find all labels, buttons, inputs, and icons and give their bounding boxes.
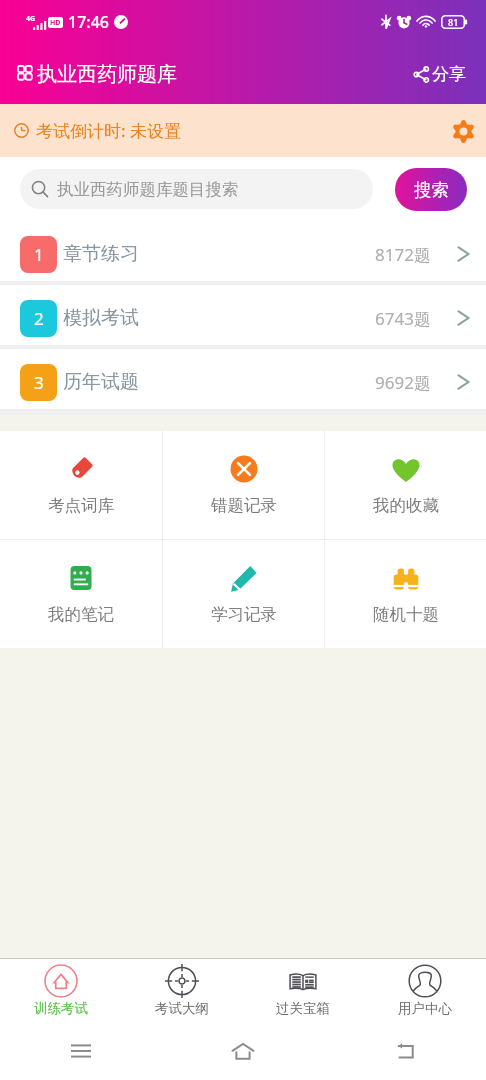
button[interactable]: 2 [0, 285, 486, 345]
button[interactable]: 学习记录 [163, 540, 324, 648]
staticText: 8172题 [375, 243, 431, 266]
button[interactable]: Settings [448, 116, 478, 146]
staticText: 考试大纲 [155, 1000, 209, 1017]
button[interactable]: 考试大纲 [121, 959, 242, 1021]
staticText: 考试倒计时: 未设置 [36, 119, 182, 142]
button[interactable]: 执业西药师题库题目搜索 [20, 169, 373, 209]
staticText: HD [50, 18, 61, 28]
button[interactable]: 分享 [411, 60, 468, 89]
staticText: 过关宝箱 [276, 1000, 330, 1017]
staticText: 执业西药师题库 [37, 62, 177, 87]
staticText: 1 [34, 243, 44, 266]
staticText: 9692题 [375, 371, 431, 394]
staticText: 17:46 [68, 11, 109, 33]
staticText: 训练考试 [34, 1000, 88, 1017]
button[interactable]: 考试倒计时: 未设置 [0, 104, 486, 157]
staticText: 分享 [432, 64, 466, 85]
button[interactable]: 1 [0, 221, 486, 281]
button[interactable]: 考点词库 [0, 431, 162, 539]
button[interactable]: Recents [61, 1031, 101, 1071]
button[interactable]: 随机十题 [325, 540, 486, 648]
button[interactable]: Home [223, 1031, 263, 1071]
button[interactable]: 用户中心 [364, 959, 486, 1021]
button[interactable]: 过关宝箱 [242, 959, 364, 1021]
staticText: 我的笔记 [48, 604, 114, 625]
button[interactable]: Back [385, 1031, 425, 1071]
button[interactable]: 我的笔记 [0, 540, 162, 648]
button[interactable]: 错题记录 [163, 431, 324, 539]
staticText: 搜索 [414, 179, 449, 201]
button[interactable]: 3 [0, 349, 486, 409]
staticText: 历年试题 [63, 370, 139, 394]
staticText: 学习记录 [211, 604, 277, 625]
staticText: 用户中心 [398, 1000, 452, 1017]
button[interactable]: 我的收藏 [325, 431, 486, 539]
staticText: 模拟考试 [63, 306, 139, 330]
staticText: 考点词库 [48, 495, 114, 516]
button[interactable]: 搜索 [395, 168, 467, 211]
staticText: 随机十题 [373, 604, 439, 625]
button[interactable]: 训练考试 [0, 959, 121, 1021]
staticText: 章节练习 [63, 242, 139, 266]
staticText: 4G [26, 14, 36, 24]
staticText: 6743题 [375, 307, 431, 330]
staticText: 81 [448, 16, 459, 28]
staticText: 我的收藏 [373, 495, 439, 516]
staticText: 2 [34, 307, 44, 330]
staticText: 执业西药师题库题目搜索 [57, 179, 239, 200]
staticText: 错题记录 [211, 495, 277, 516]
staticText: 3 [34, 371, 44, 394]
